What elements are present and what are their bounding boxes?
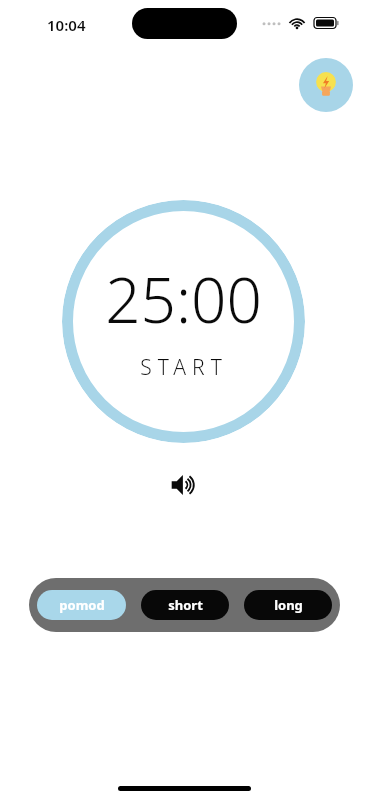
button[interactable]: short	[141, 590, 229, 620]
staticText: long	[274, 596, 303, 614]
button[interactable]: long	[244, 590, 332, 620]
button[interactable]: Toggle sound	[167, 468, 201, 502]
staticText: START	[140, 353, 228, 382]
button[interactable]: 25:00	[62, 200, 305, 443]
staticText: 25:00	[105, 257, 262, 341]
button[interactable]: Theme / Hint	[299, 58, 353, 112]
staticText: short	[168, 596, 203, 614]
staticText: 10:04	[47, 15, 86, 35]
staticText: pomod	[59, 596, 105, 614]
button[interactable]: pomod	[37, 590, 126, 620]
